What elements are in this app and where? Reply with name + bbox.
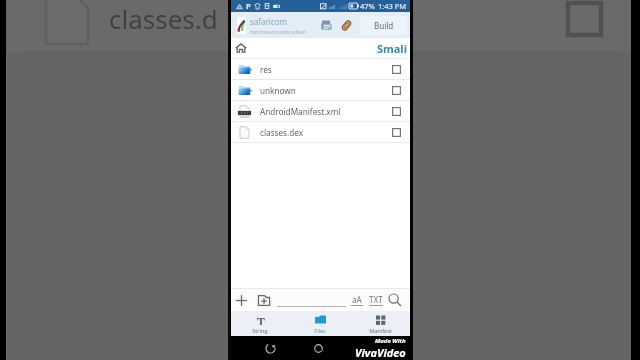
button[interactable]: Home	[314, 344, 323, 353]
staticText: Build	[374, 20, 394, 31]
staticText: P	[246, 1, 251, 11]
staticText: T	[257, 314, 265, 325]
button[interactable]: Search	[388, 293, 402, 307]
staticText: Smali	[377, 41, 407, 56]
staticText: Manifest	[369, 327, 392, 334]
button[interactable]: Font size	[351, 294, 363, 306]
staticText: com.freevoirncode.safwari	[250, 29, 307, 35]
button[interactable]: AndroidManifest.xml	[230, 101, 410, 121]
staticText: safaricom	[250, 16, 288, 27]
button[interactable]: classes.dex	[230, 122, 410, 142]
button[interactable]: Build	[360, 16, 407, 35]
button[interactable]: Attach	[340, 19, 353, 32]
staticText: classes.dex	[260, 127, 304, 138]
button[interactable]: Files	[290, 311, 350, 336]
staticText: classes.d	[109, 1, 218, 36]
button[interactable]	[277, 293, 346, 307]
staticText: aA	[352, 294, 362, 305]
staticText: 1:43 PM	[378, 1, 407, 11]
staticText: Made With	[375, 337, 406, 345]
staticText: String	[252, 327, 268, 334]
button[interactable]: Add file	[235, 294, 248, 307]
button[interactable]: Recents	[266, 344, 275, 353]
button[interactable]: Logs	[320, 19, 333, 32]
button[interactable]: Manifest	[350, 311, 410, 336]
button[interactable]: Text encoding	[369, 294, 383, 306]
button[interactable]: New folder	[257, 293, 272, 308]
staticText: TXT	[369, 294, 383, 305]
button[interactable]: res	[230, 59, 410, 79]
staticText: VivaVideo	[355, 345, 406, 360]
staticText: Files	[314, 327, 326, 334]
staticText: AndroidManifest.xml	[260, 106, 341, 117]
staticText: unknown	[260, 85, 296, 96]
staticText: res	[260, 64, 272, 75]
button[interactable]: T	[230, 311, 290, 336]
button[interactable]: unknown	[230, 80, 410, 100]
button[interactable]: Home	[235, 42, 247, 54]
staticText: 47%	[360, 1, 375, 11]
